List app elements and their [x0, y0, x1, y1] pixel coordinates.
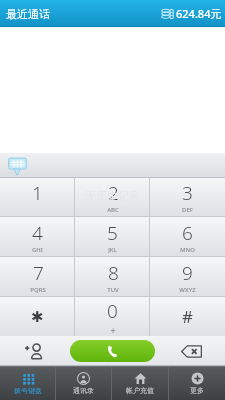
button[interactable]: #	[150, 297, 225, 336]
staticText: 8	[108, 260, 119, 286]
button[interactable]: Add contact	[0, 336, 68, 366]
staticText: 9	[182, 260, 193, 286]
button[interactable]: 2	[75, 178, 150, 216]
staticText: 4	[32, 220, 43, 246]
button[interactable]: 7	[0, 257, 75, 296]
staticText: ✱	[31, 308, 44, 325]
button[interactable]: 8	[75, 257, 150, 296]
staticText: 6	[182, 220, 193, 246]
button[interactable]: 6	[150, 217, 225, 256]
button[interactable]: 1	[0, 178, 75, 216]
button[interactable]: 5	[75, 217, 150, 256]
staticText: 7	[33, 260, 44, 286]
staticText: ABC	[107, 206, 119, 214]
staticText: 624.84元	[176, 6, 222, 21]
button[interactable]: 9	[150, 257, 225, 296]
staticText: 3	[182, 180, 193, 206]
staticText: 帐户充值	[126, 386, 154, 395]
button[interactable]: 帐户充值	[112, 367, 168, 400]
staticText: +	[110, 324, 116, 336]
staticText: 通讯录	[73, 386, 94, 395]
staticText: 2	[108, 180, 119, 206]
staticText: WXYZ	[179, 286, 196, 294]
button[interactable]: 3	[150, 178, 225, 216]
button[interactable]: 0	[75, 297, 150, 336]
staticText: 无历史记录	[85, 189, 140, 203]
button[interactable]: 拨号键盘	[0, 367, 55, 400]
staticText: 5	[107, 220, 118, 246]
button[interactable]: Hide keypad	[4, 154, 30, 178]
staticText: PQRS	[30, 286, 46, 294]
button[interactable]: ✱	[0, 297, 75, 336]
staticText: JKL	[108, 246, 117, 254]
button[interactable]: 4	[0, 217, 75, 256]
button[interactable]: 通讯录	[56, 367, 111, 400]
staticText: TUV	[107, 286, 119, 294]
staticText: 0	[107, 298, 118, 324]
staticText: MNO	[180, 246, 195, 254]
button[interactable]: Call	[70, 340, 155, 362]
button[interactable]: Delete	[157, 336, 225, 366]
staticText: 1	[32, 180, 43, 206]
staticText: 最近通话	[6, 7, 50, 21]
staticText: #	[182, 305, 193, 328]
staticText: DEF	[182, 206, 193, 214]
staticText: GHI	[32, 246, 43, 254]
staticText: 拨号键盘	[14, 386, 42, 395]
button[interactable]: 更多	[169, 367, 225, 400]
staticText: 更多	[190, 386, 204, 395]
